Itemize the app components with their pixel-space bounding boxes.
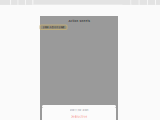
button[interactable]: Destructive	[42, 112, 116, 118]
button[interactable]: Show Action Sheet	[40, 25, 67, 29]
staticText: Destructive	[70, 115, 87, 118]
staticText: Action Sheets	[68, 19, 89, 23]
staticText: Show Action Sheet	[42, 26, 64, 29]
staticText: Modify your album	[69, 109, 88, 112]
